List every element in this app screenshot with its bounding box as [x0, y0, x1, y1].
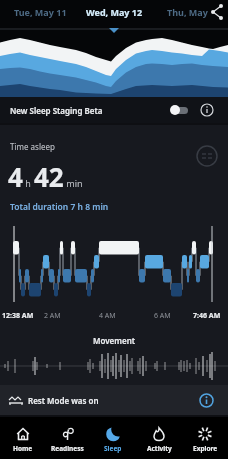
staticText: 7:46 AM — [193, 311, 221, 321]
button[interactable]: Tue, May 11 — [14, 6, 67, 18]
staticText: 4 AM — [99, 311, 116, 321]
staticText: Time asleep — [10, 141, 55, 152]
staticText: h — [23, 177, 34, 189]
button[interactable] — [199, 393, 214, 408]
staticText: 4 — [8, 159, 23, 194]
staticText: 6 AM — [154, 311, 171, 321]
staticText: min — [64, 177, 83, 189]
button[interactable]: Activity — [136, 417, 182, 459]
button[interactable]: Thu, May — [167, 6, 208, 18]
staticText: Total duration 7 h 8 min — [10, 201, 109, 213]
button[interactable]: New Sleep Staging Beta — [0, 97, 228, 123]
staticText: Readiness — [51, 444, 84, 453]
staticText: Movement — [0, 335, 228, 346]
staticText: Sleep — [104, 444, 122, 453]
staticText: Rest Mode was on — [28, 395, 99, 406]
button[interactable] — [200, 103, 214, 117]
button[interactable]: Rest Mode was on — [0, 385, 228, 415]
button[interactable] — [170, 104, 190, 116]
staticText: 12:38 AM — [2, 311, 34, 321]
button[interactable]: Explore — [182, 417, 228, 459]
button[interactable]: Wed, May 12 — [86, 6, 143, 18]
staticText: Home — [13, 444, 33, 453]
staticText: Activity — [147, 444, 172, 453]
staticText: Explore — [193, 444, 218, 453]
button[interactable] — [206, 1, 228, 23]
staticText: 2 AM — [44, 311, 61, 321]
staticText: 42 — [34, 159, 64, 194]
button[interactable]: Sleep — [90, 417, 136, 459]
staticText: New Sleep Staging Beta — [10, 105, 103, 116]
button[interactable]: Home — [0, 417, 45, 459]
button[interactable]: Readiness — [45, 417, 90, 459]
